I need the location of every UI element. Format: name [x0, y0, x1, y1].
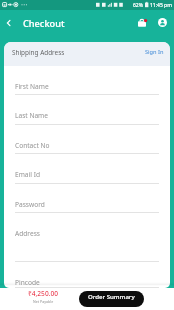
button[interactable]: Last Name — [15, 95, 159, 125]
button[interactable]: Back — [2, 16, 16, 30]
staticText: Email Id — [15, 170, 40, 179]
button[interactable]: Address — [15, 213, 159, 262]
button[interactable]: Account — [154, 14, 170, 30]
staticText: Last Name — [15, 111, 49, 120]
button[interactable]: Order Summary — [79, 291, 144, 307]
staticText: Shipping Address — [12, 48, 65, 57]
staticText: Checkout — [23, 17, 65, 30]
button[interactable]: Contact No — [15, 125, 159, 154]
button[interactable]: Cart — [134, 15, 150, 31]
staticText: 11:45 pm — [150, 2, 172, 9]
staticText: Address — [15, 229, 40, 238]
staticText: First Name — [15, 82, 49, 91]
staticText: Contact No — [15, 141, 50, 150]
staticText: 62% — [133, 2, 143, 9]
button[interactable]: Email Id — [15, 154, 159, 184]
staticText: Pincode — [15, 278, 40, 287]
button[interactable]: Password — [15, 184, 159, 213]
staticText: Order Summary — [88, 292, 135, 300]
staticText: Net Payable — [33, 299, 54, 304]
staticText: ₹4,250.00 — [28, 289, 58, 298]
button[interactable]: Sign In — [141, 45, 168, 59]
staticText: Sign In — [145, 48, 164, 56]
staticText: Password — [15, 200, 45, 209]
button[interactable]: Pincode — [15, 262, 159, 288]
button[interactable]: First Name — [15, 66, 159, 95]
